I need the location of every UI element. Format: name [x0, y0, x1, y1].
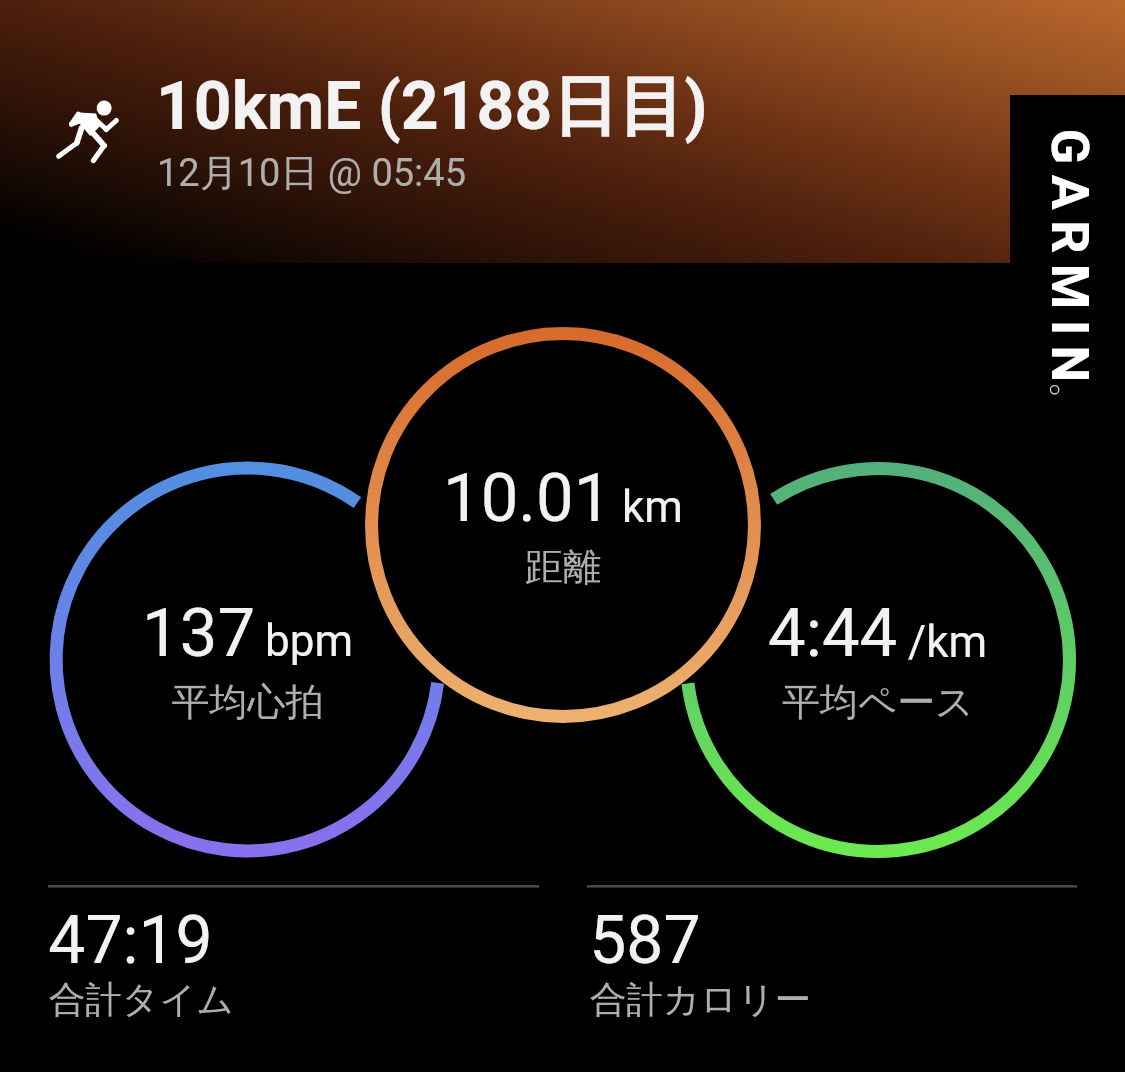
button[interactable]: 合計タイム 47:19 — [40, 890, 540, 1040]
button[interactable]: 合計カロリー 587 — [580, 890, 1078, 1040]
button[interactable]: 平均心拍 137 bpm — [50, 462, 446, 858]
button[interactable]: 平均ペース 4:44 /km — [680, 462, 1076, 858]
other: Running activity — [57, 99, 117, 165]
button[interactable]: Running activity — [0, 0, 1125, 263]
button[interactable]: Garmin — [1010, 95, 1125, 405]
button[interactable]: 距離 10.01 km — [365, 327, 761, 723]
